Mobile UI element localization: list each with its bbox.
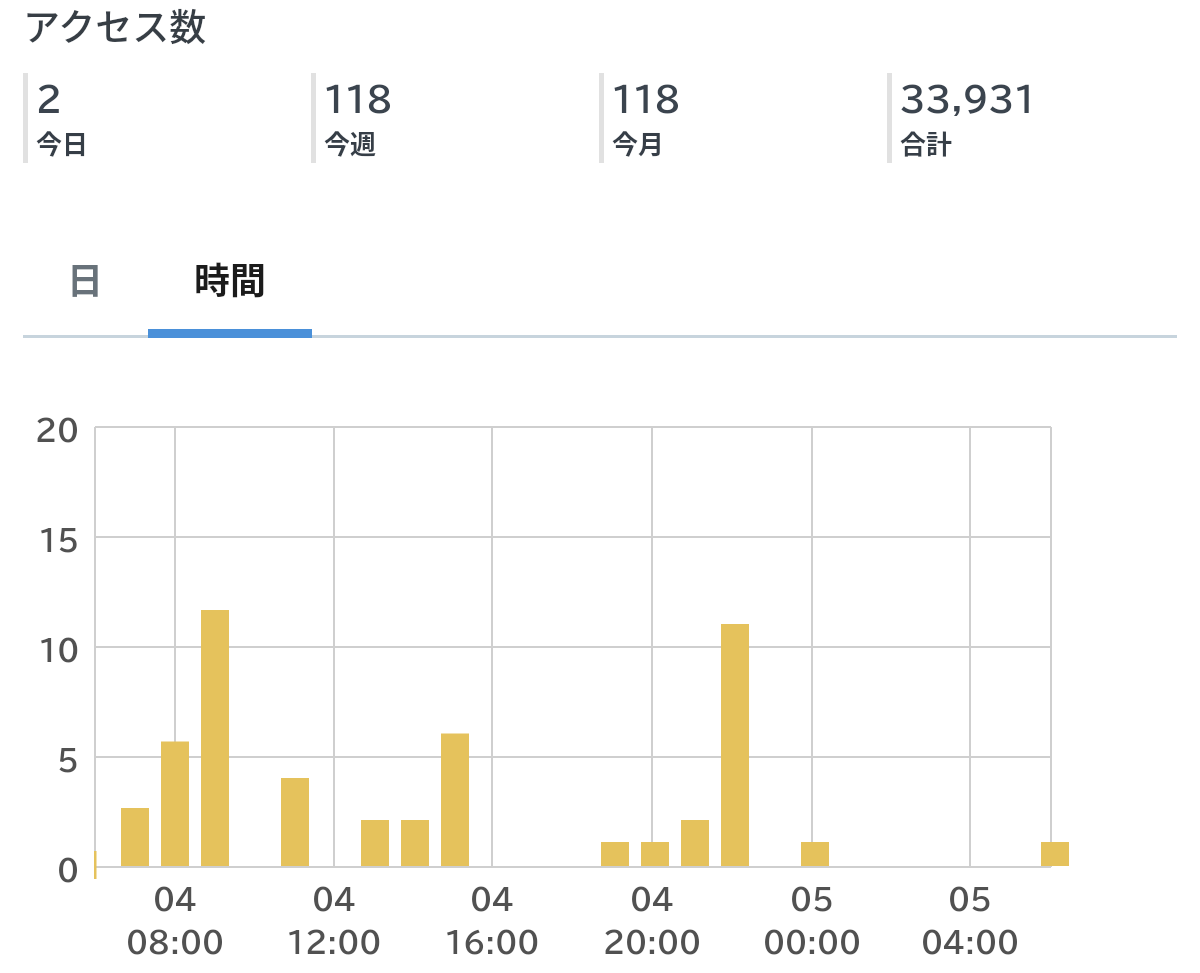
button[interactable]: 118	[599, 73, 887, 163]
staticText: 33,931	[900, 82, 1036, 116]
button[interactable]: 33,931	[887, 73, 1175, 163]
staticText: 10	[39, 635, 80, 664]
staticText: アクセス数	[23, 0, 207, 52]
staticText: 今週	[324, 124, 377, 162]
staticText: 0	[57, 855, 80, 884]
staticText: 合計	[900, 124, 953, 162]
staticText: 今月	[612, 124, 665, 162]
staticText: 04:00	[921, 927, 1019, 956]
staticText: 12:00	[287, 927, 382, 956]
staticText: 04	[630, 884, 675, 913]
button[interactable]: 時間	[148, 230, 312, 325]
staticText: 16:00	[445, 927, 540, 956]
staticText: 時間	[194, 252, 267, 304]
staticText: 04	[312, 884, 357, 913]
staticText: 20	[35, 415, 80, 444]
staticText: 04	[470, 884, 515, 913]
staticText: 5	[57, 745, 80, 774]
staticText: 04	[153, 884, 198, 913]
staticText: 05	[948, 884, 993, 913]
staticText: 20:00	[603, 927, 701, 956]
staticText: 15	[39, 525, 80, 554]
button[interactable]: 118	[311, 73, 599, 163]
staticText: 2	[36, 82, 62, 116]
staticText: 118	[612, 82, 681, 116]
staticText: 今日	[36, 124, 89, 162]
button[interactable]: 日	[23, 230, 148, 325]
staticText: 00:00	[763, 927, 861, 956]
staticText: 日	[67, 252, 104, 304]
staticText: 08:00	[126, 927, 224, 956]
staticText: 118	[324, 82, 393, 116]
button[interactable]: 2	[23, 73, 311, 163]
staticText: 05	[790, 884, 835, 913]
